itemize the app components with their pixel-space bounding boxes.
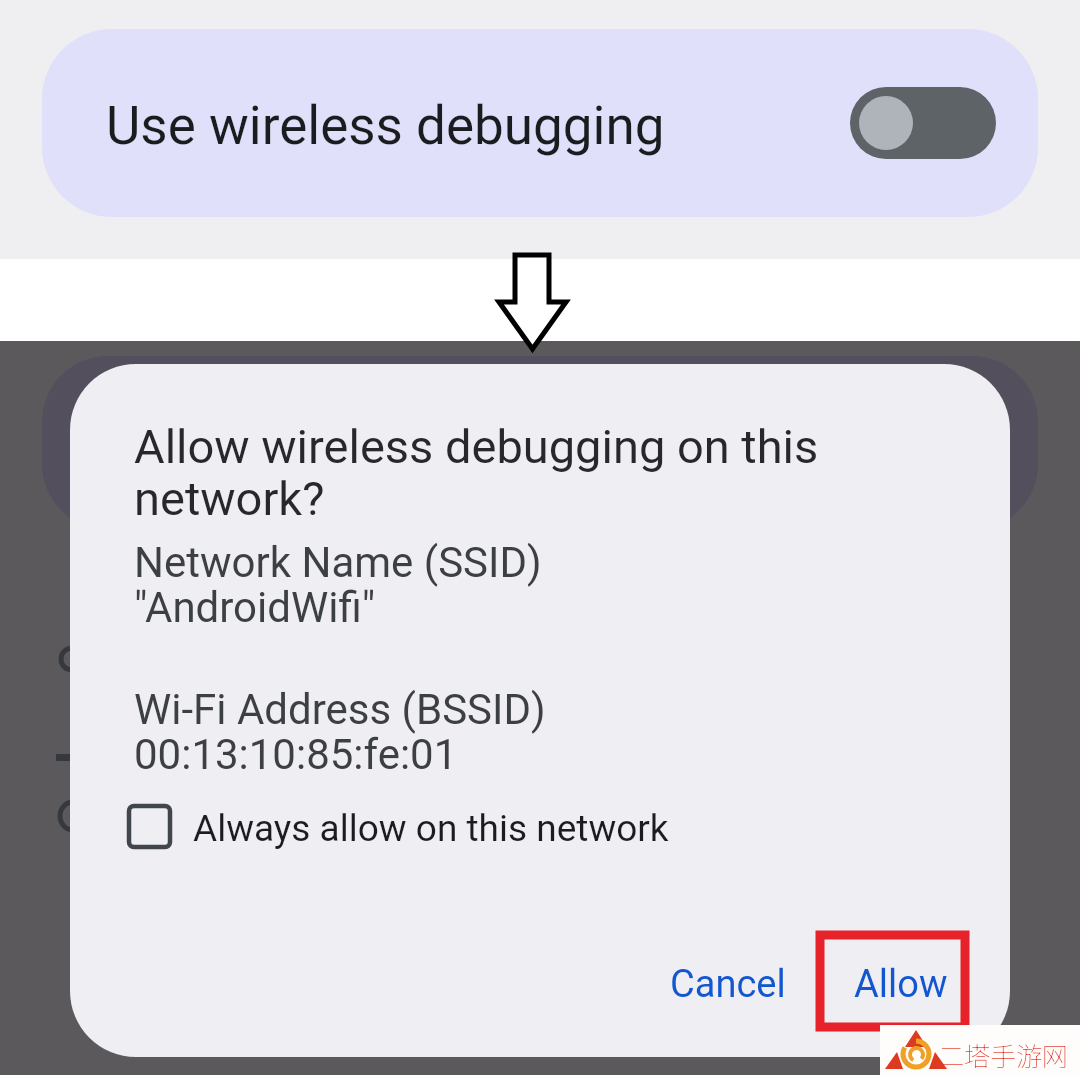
staticText: 二塔手游网 [938,1036,1069,1074]
staticText: Cancel [670,962,786,1007]
button[interactable] [850,87,996,159]
button[interactable]: Use wireless debugging [42,29,1038,217]
button[interactable]: Allow [824,955,969,1045]
staticText: 00:13:10:85:fe:01 [134,730,458,779]
button[interactable]: Always allow on this network [110,790,670,862]
staticText: Network Name (SSID) [134,538,542,587]
staticText: Allow wireless debugging on this [134,419,819,474]
staticText: "AndroidWifi" [134,583,376,632]
staticText: Always allow on this network [193,807,669,850]
button[interactable]: 二塔手游网 [880,1025,1080,1075]
staticText: Wi-Fi Address (BSSID) [134,685,546,734]
staticText: network? [134,471,325,526]
staticText: Allow [854,962,948,1007]
staticText: Use wireless debugging [106,95,665,157]
button[interactable]: Cancel [640,955,810,1045]
